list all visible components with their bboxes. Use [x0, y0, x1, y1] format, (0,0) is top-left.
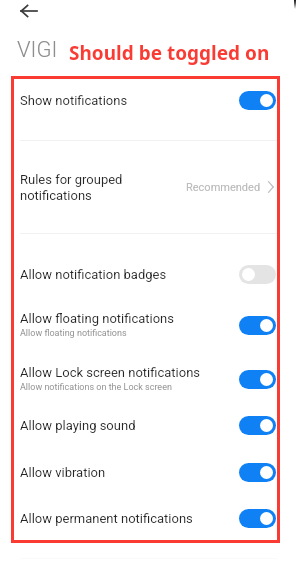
- button[interactable]: Allow floating notifications, on: [239, 316, 276, 335]
- button[interactable]: Allow playing sound: [11, 411, 280, 439]
- staticText: Allow notifications on the Lock screen: [20, 382, 172, 393]
- button[interactable]: Allow notification badges: [11, 260, 280, 288]
- staticText: Allow notification badges: [20, 267, 167, 282]
- button[interactable]: Allow permanent notifications, on: [239, 509, 276, 528]
- button[interactable]: Allow Lock screen notifications, on: [239, 370, 276, 389]
- staticText: Allow permanent notifications: [20, 511, 193, 526]
- staticText: VIGI: [17, 37, 58, 63]
- staticText: Should be toggled on: [69, 40, 270, 66]
- staticText: Allow floating notifications: [20, 311, 175, 326]
- staticText: Allow playing sound: [20, 418, 136, 433]
- button[interactable]: Allow vibration, on: [239, 463, 276, 482]
- staticText: Recommended: [186, 181, 261, 194]
- button[interactable]: Show notifications, on: [239, 91, 276, 110]
- button[interactable]: Show notifications: [11, 86, 280, 114]
- button[interactable]: Allow playing sound, on: [239, 416, 276, 435]
- staticText: Allow floating notifications: [20, 328, 127, 339]
- staticText: Allow vibration: [20, 465, 106, 480]
- button[interactable]: Allow Lock screen notifications: [11, 361, 280, 397]
- button[interactable]: Allow notification badges, off: [239, 265, 276, 284]
- staticText: Allow Lock screen notifications: [20, 365, 201, 380]
- staticText: Rules for grouped notifications: [20, 172, 123, 203]
- button[interactable]: Allow floating notifications: [11, 307, 280, 343]
- button[interactable]: Allow vibration: [11, 458, 280, 486]
- button[interactable]: Allow permanent notifications: [11, 504, 280, 532]
- button[interactable]: Rules for grouped notifications: [11, 168, 280, 206]
- staticText: Show notifications: [20, 93, 128, 108]
- button[interactable]: Back: [13, 0, 45, 27]
